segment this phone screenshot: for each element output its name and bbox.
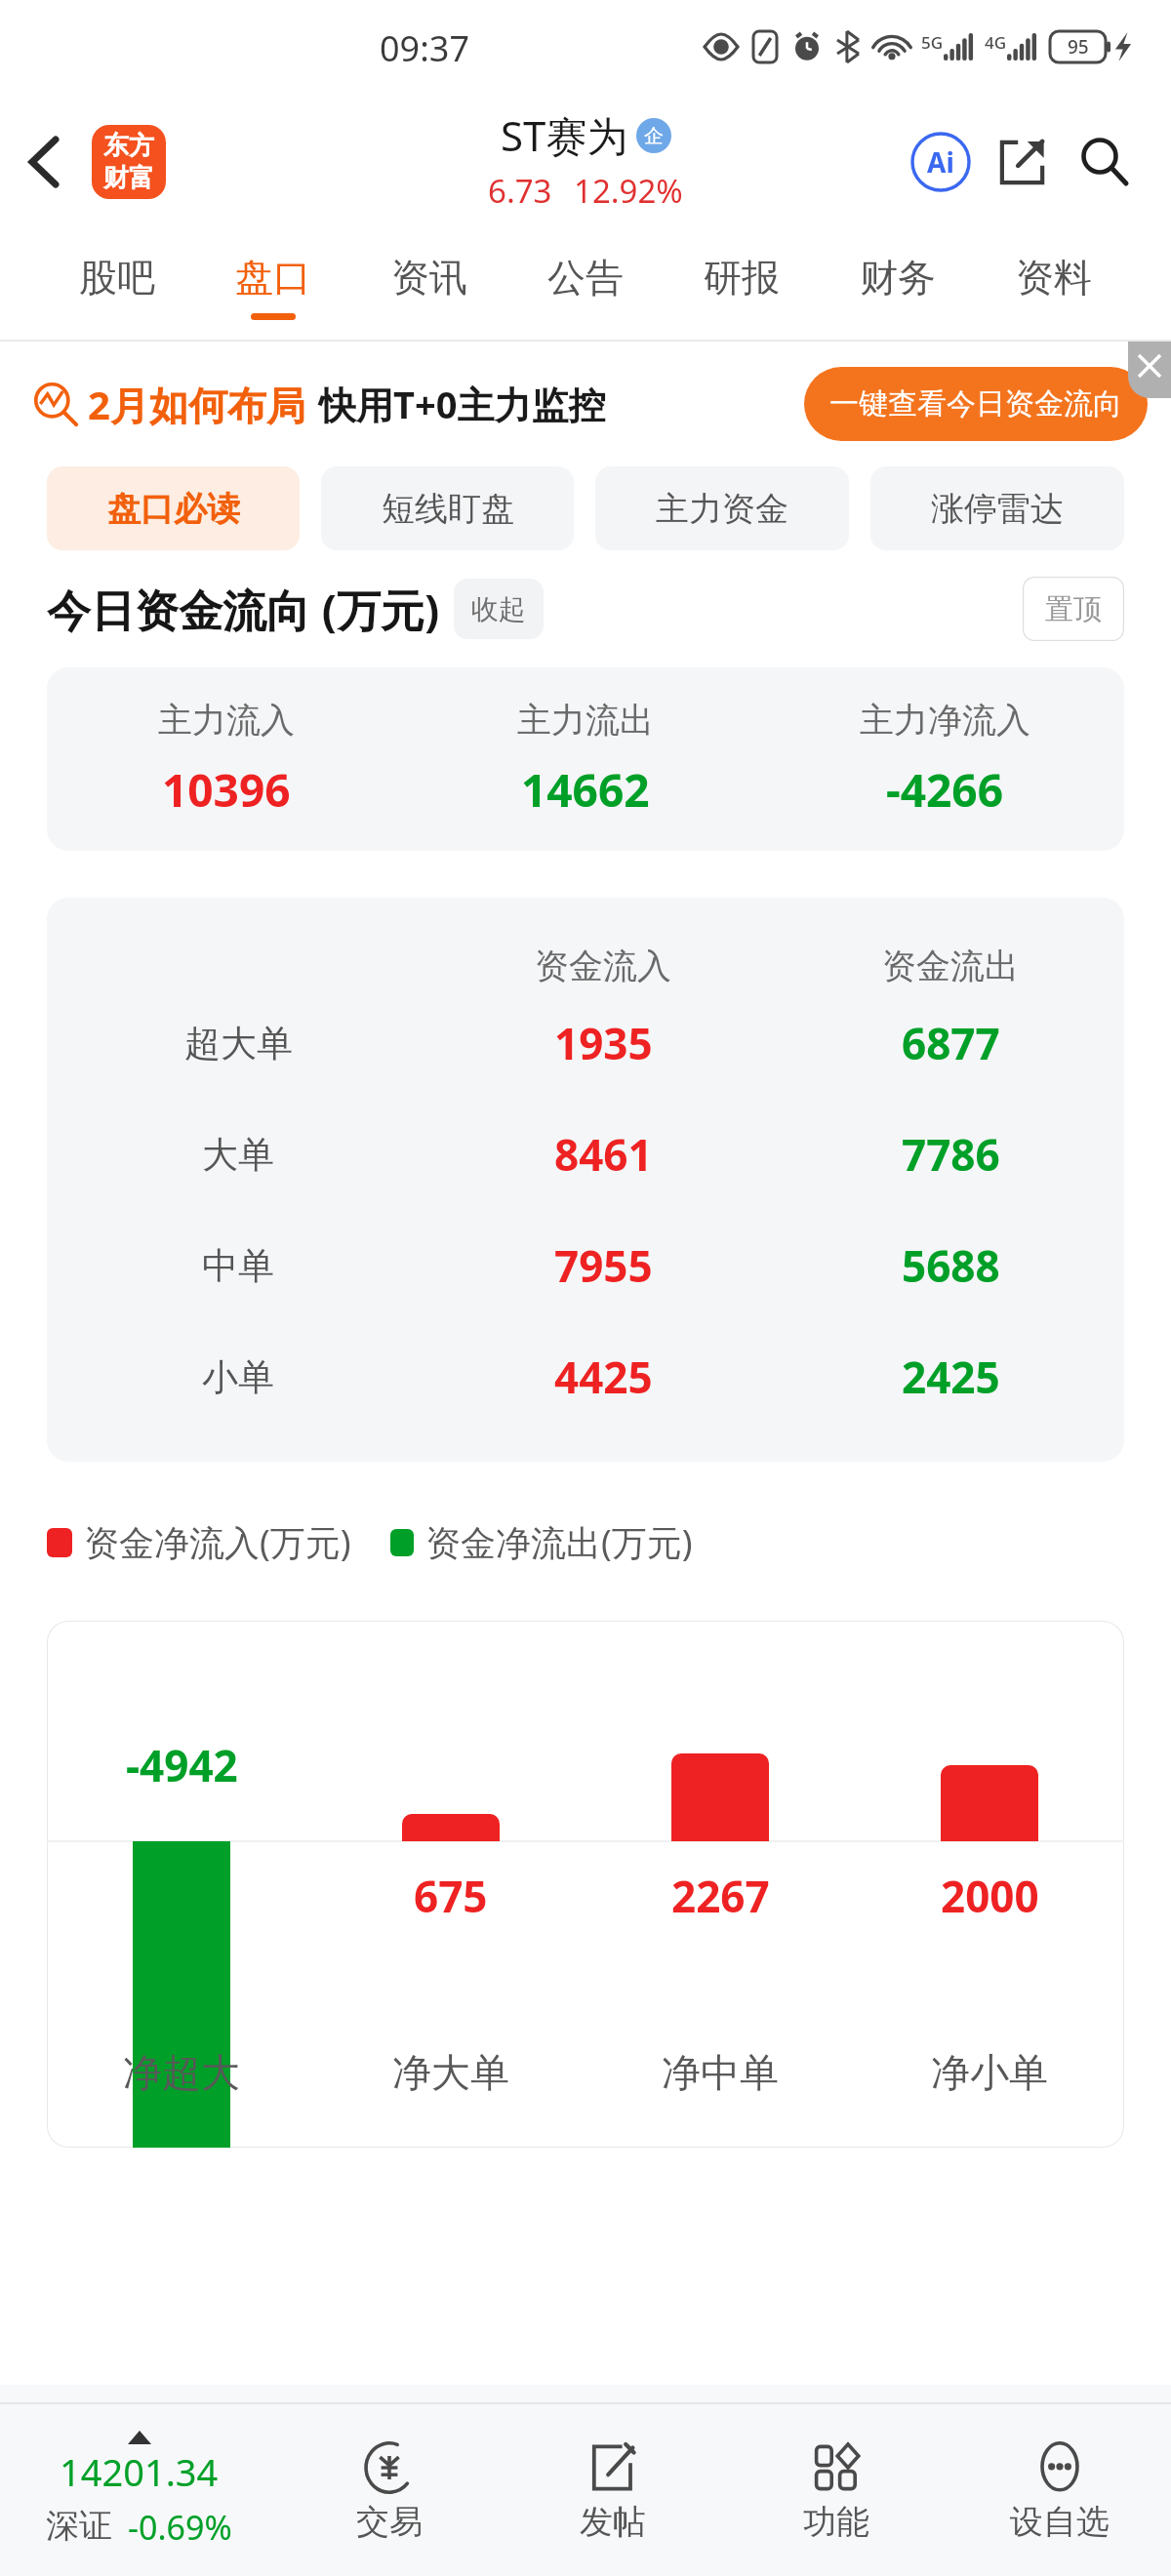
- staticText: 公告: [547, 254, 624, 302]
- staticText: 4425: [554, 1348, 653, 1406]
- staticText: 5688: [902, 1236, 1000, 1295]
- staticText: 快用T+0主力监控: [319, 379, 606, 429]
- button[interactable]: 设自选: [948, 2404, 1171, 2576]
- staticText: 财务: [860, 254, 936, 302]
- staticText: 财富: [103, 162, 154, 194]
- staticText: 资金净流出(万元): [425, 1518, 693, 1566]
- staticText: 深证: [46, 2505, 112, 2547]
- staticText: 涨停雷达: [931, 488, 1064, 530]
- staticText: 4G: [985, 31, 1007, 54]
- button[interactable]: 盘口: [195, 234, 351, 340]
- staticText: 12.92%: [574, 169, 683, 213]
- staticText: 设自选: [1010, 2501, 1110, 2543]
- button[interactable]: AI: [900, 121, 982, 203]
- staticText: 资金净流入(万元): [84, 1518, 351, 1566]
- button[interactable]: 研报: [664, 234, 820, 340]
- staticText: ST赛为: [501, 107, 628, 163]
- staticText: 净中单: [662, 2048, 779, 2097]
- staticText: 7786: [902, 1125, 1000, 1184]
- button[interactable]: 14201.34: [0, 2404, 278, 2576]
- button[interactable]: 公告: [507, 234, 664, 340]
- staticText: 2425: [902, 1348, 1000, 1406]
- button[interactable]: Close: [1128, 342, 1171, 398]
- staticText: 交易: [356, 2501, 423, 2543]
- staticText: 短线盯盘: [382, 488, 514, 530]
- staticText: 2月如何布局: [88, 378, 305, 431]
- staticText: 6877: [902, 1014, 1000, 1072]
- staticText: 大单: [202, 1132, 274, 1178]
- staticText: 主力净流入: [860, 699, 1030, 742]
- staticText: 超大单: [184, 1021, 293, 1067]
- staticText: Ai: [927, 143, 954, 181]
- button[interactable]: 置顶: [1023, 577, 1124, 641]
- staticText: 发帖: [580, 2501, 646, 2543]
- button[interactable]: 盘口必读: [47, 466, 300, 550]
- staticText: 东方: [103, 130, 154, 162]
- staticText: 7955: [554, 1236, 653, 1295]
- staticText: 今日资金流向 (万元): [47, 580, 440, 639]
- staticText: 6.73: [488, 169, 552, 213]
- staticText: 14662: [521, 759, 650, 821]
- staticText: 净大单: [392, 2048, 509, 2097]
- staticText: 中单: [202, 1243, 274, 1289]
- staticText: 主力流出: [517, 699, 654, 742]
- staticText: 净小单: [931, 2048, 1048, 2097]
- staticText: 2000: [941, 1867, 1039, 1925]
- button[interactable]: Search: [1064, 121, 1146, 203]
- staticText: 功能: [803, 2501, 869, 2543]
- button[interactable]: 短线盯盘: [321, 466, 574, 550]
- staticText: 09:37: [380, 24, 470, 72]
- button[interactable]: 收起: [454, 579, 544, 639]
- staticText: 5G: [921, 31, 944, 54]
- staticText: 2267: [671, 1867, 770, 1925]
- staticText: 资讯: [391, 254, 467, 302]
- button[interactable]: 股吧: [39, 234, 195, 340]
- staticText: 14201.34: [60, 2446, 219, 2497]
- staticText: -0.69%: [128, 2505, 232, 2550]
- button[interactable]: 一键查看今日资金流向: [804, 367, 1148, 441]
- staticText: 主力资金: [656, 488, 788, 530]
- staticText: 收起: [471, 592, 526, 626]
- button[interactable]: Back: [0, 119, 86, 205]
- staticText: 置顶: [1045, 591, 1102, 627]
- button[interactable]: East Money: [92, 125, 166, 199]
- staticText: 资金流入: [535, 945, 671, 987]
- staticText: 675: [414, 1867, 488, 1925]
- staticText: 企: [644, 124, 664, 148]
- button[interactable]: 资讯: [351, 234, 507, 340]
- staticText: 95: [1068, 34, 1089, 60]
- staticText: -4266: [886, 759, 1003, 821]
- staticText: 10396: [162, 759, 291, 821]
- staticText: -4942: [126, 1736, 238, 1794]
- staticText: 一键查看今日资金流向: [829, 385, 1122, 423]
- button[interactable]: 交易: [278, 2404, 501, 2576]
- staticText: 小单: [202, 1354, 274, 1400]
- staticText: 资料: [1016, 254, 1092, 302]
- button[interactable]: 功能: [724, 2404, 948, 2576]
- staticText: 研报: [704, 254, 780, 302]
- button[interactable]: 财务: [820, 234, 976, 340]
- button[interactable]: 涨停雷达: [870, 466, 1124, 550]
- staticText: 主力流入: [158, 699, 295, 742]
- button[interactable]: 主力资金: [595, 466, 849, 550]
- button[interactable]: 资料: [976, 234, 1132, 340]
- staticText: 净超大: [123, 2048, 240, 2097]
- staticText: 资金流出: [882, 945, 1019, 987]
- staticText: 盘口必读: [107, 488, 240, 530]
- button[interactable]: Share: [982, 121, 1064, 203]
- staticText: 1935: [554, 1014, 653, 1072]
- button[interactable]: 发帖: [501, 2404, 724, 2576]
- staticText: 盘口: [235, 254, 311, 302]
- staticText: 8461: [554, 1125, 653, 1184]
- staticText: 股吧: [79, 254, 155, 302]
